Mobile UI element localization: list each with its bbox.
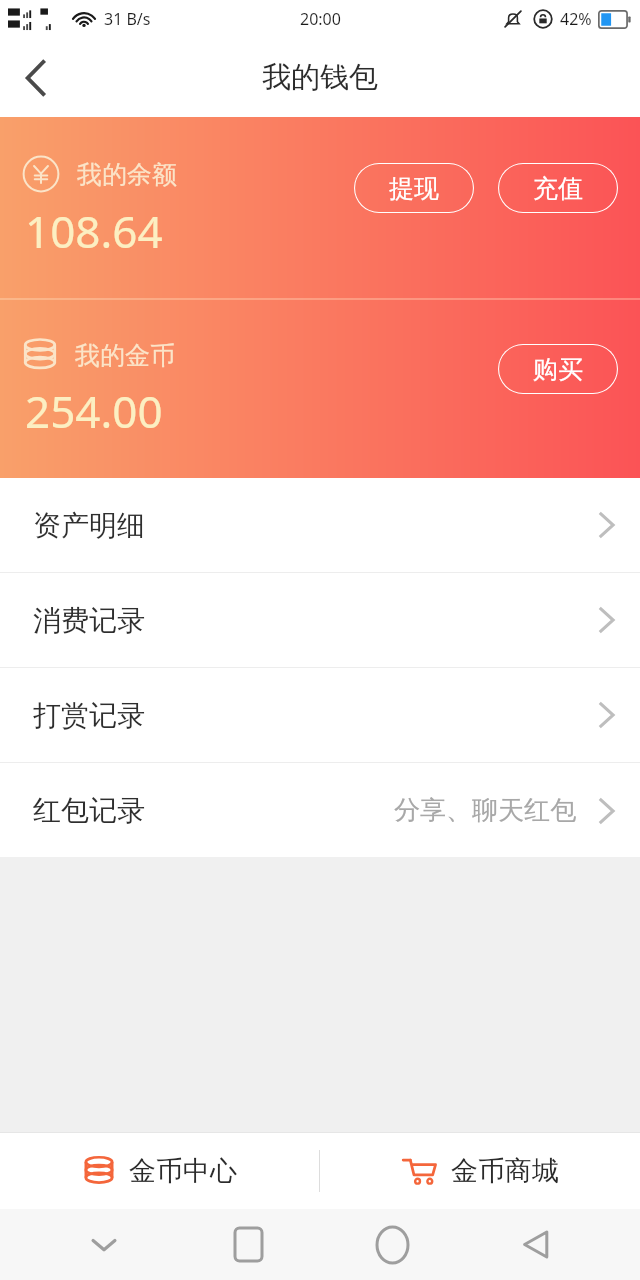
staticText: 提现 <box>389 173 439 204</box>
staticText: 充值 <box>533 173 583 204</box>
staticText: 我的余额 <box>77 159 177 190</box>
button[interactable]: 消费记录 <box>0 573 640 667</box>
button[interactable]: Recent apps <box>208 1209 288 1280</box>
button[interactable]: 充值 <box>498 163 618 213</box>
staticText: 消费记录 <box>33 603 145 638</box>
staticText: 42% <box>560 8 592 30</box>
staticText: 打赏记录 <box>33 698 145 733</box>
button[interactable]: Home <box>352 1209 432 1280</box>
staticText: 金币中心 <box>129 1154 237 1188</box>
staticText: 金币商城 <box>451 1154 559 1188</box>
button[interactable]: 红包记录 <box>0 763 640 857</box>
button[interactable]: 购买 <box>498 344 618 394</box>
staticText: 108.64 <box>25 201 163 261</box>
button[interactable]: 打赏记录 <box>0 668 640 762</box>
button[interactable]: Back <box>0 42 72 114</box>
staticText: 红包记录 <box>33 793 145 828</box>
staticText: 我的钱包 <box>262 59 378 96</box>
staticText: 我的金币 <box>75 340 175 371</box>
button[interactable]: 资产明细 <box>0 478 640 572</box>
button[interactable]: Back <box>496 1209 576 1280</box>
button[interactable]: 提现 <box>354 163 474 213</box>
staticText: 分享、聊天红包 <box>394 794 576 827</box>
staticText: 购买 <box>533 354 583 385</box>
staticText: 254.00 <box>25 381 163 441</box>
staticText: 资产明细 <box>33 508 145 543</box>
button[interactable]: Hide <box>64 1209 144 1280</box>
button[interactable]: 金币商城 <box>320 1133 640 1209</box>
staticText: 20:00 <box>300 8 341 30</box>
button[interactable]: 金币中心 <box>0 1133 319 1209</box>
staticText: 31 B/s <box>104 8 151 30</box>
